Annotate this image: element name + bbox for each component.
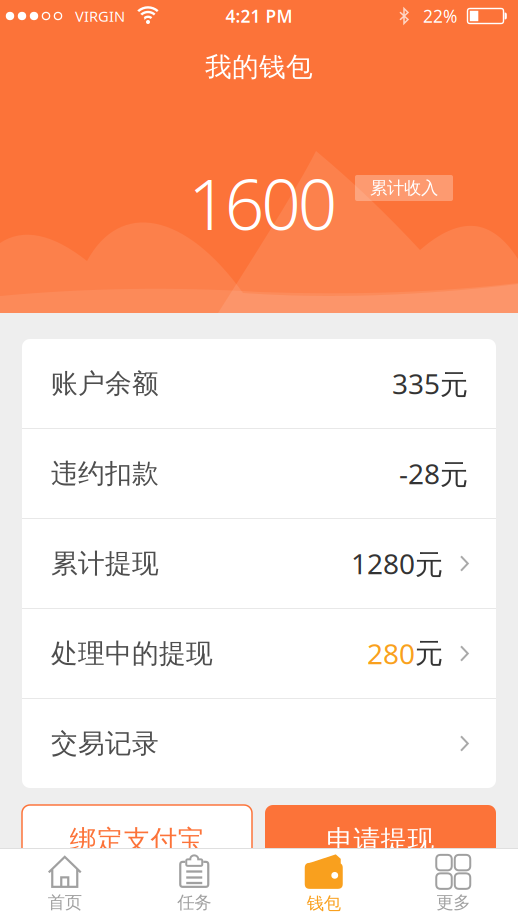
staticText: 累计收入 (370, 177, 438, 199)
staticText: 任务 (177, 892, 211, 913)
staticText: 申请提现 (326, 824, 434, 856)
button[interactable]: 违约扣款 (22, 429, 496, 518)
button[interactable]: 申请提现 (265, 805, 496, 875)
staticText: 22% (423, 4, 457, 27)
staticText: 元 (415, 636, 443, 671)
staticText: 账户余额 (51, 367, 159, 400)
staticText: 280 (367, 635, 415, 672)
button[interactable]: 任务 (139, 851, 249, 917)
staticText: 处理中的提现 (51, 637, 213, 670)
staticText: 更多 (436, 892, 470, 913)
button[interactable]: 交易记录 (22, 699, 496, 788)
button[interactable]: 更多 (398, 851, 508, 917)
staticText: 累计提现 (51, 547, 159, 580)
staticText: 违约扣款 (51, 457, 159, 490)
staticText: 1280元 (351, 545, 443, 582)
button[interactable]: 首页 (10, 851, 120, 917)
button[interactable]: 处理中的提现 (22, 609, 496, 698)
staticText: 首页 (48, 892, 82, 913)
button[interactable]: 累计提现 (22, 519, 496, 608)
button[interactable]: 账户余额 (22, 339, 496, 428)
staticText: 钱包 (307, 893, 341, 914)
button[interactable]: 绑定支付宝 (22, 805, 252, 875)
staticText: 4:21 PM (225, 4, 292, 27)
staticText: 我的钱包 (205, 51, 313, 83)
staticText: VIRGIN (75, 6, 125, 26)
staticText: 绑定支付宝 (69, 824, 204, 856)
staticText: 交易记录 (51, 727, 159, 760)
staticText: 335元 (392, 365, 468, 402)
staticText: 1600 (188, 157, 338, 249)
staticText: -28元 (399, 455, 468, 492)
button[interactable]: 钱包 (269, 851, 379, 917)
